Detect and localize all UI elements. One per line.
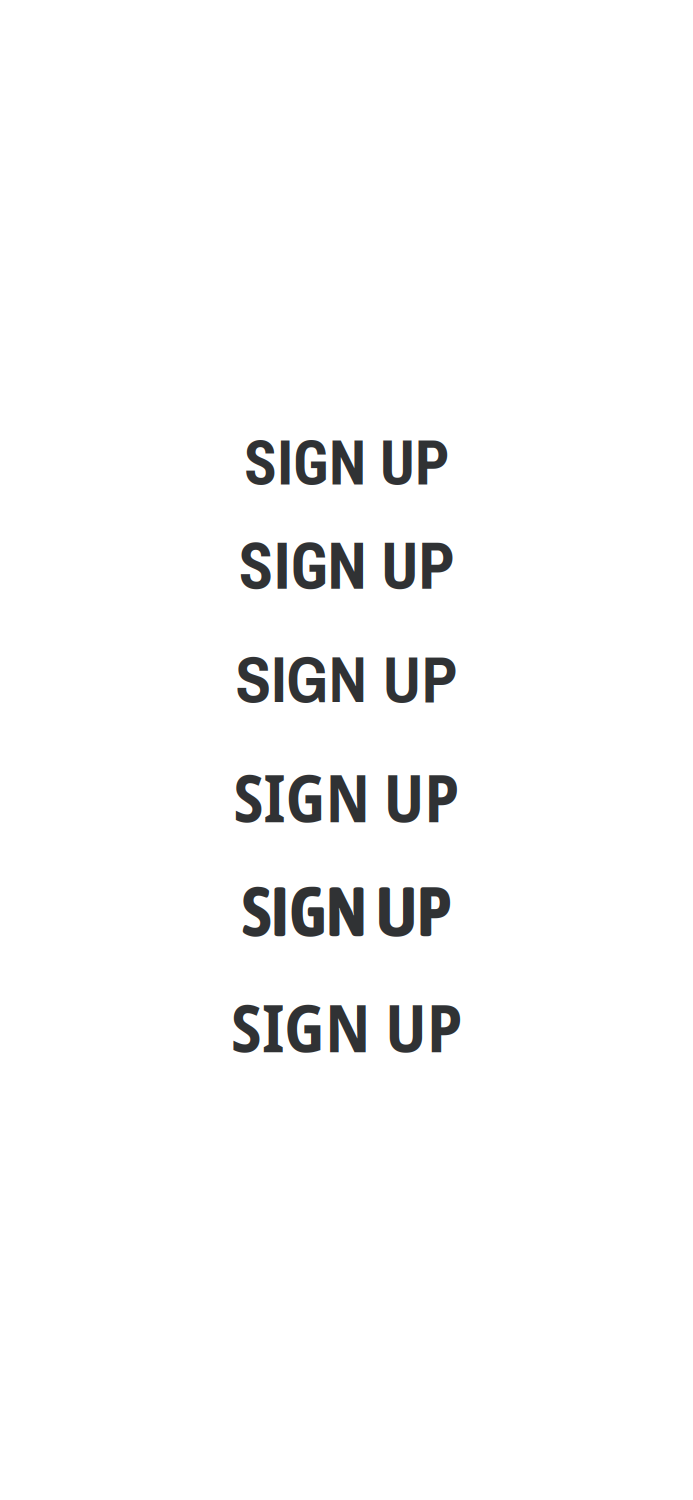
staticText: SIGN UP	[238, 529, 454, 604]
staticText: SIGN UP	[242, 871, 451, 951]
staticText: SIGN UP	[244, 428, 449, 499]
staticText: SIGN UP	[235, 634, 457, 722]
staticText: SIGN UP	[231, 981, 462, 1072]
staticText: SIGN UP	[233, 752, 459, 841]
